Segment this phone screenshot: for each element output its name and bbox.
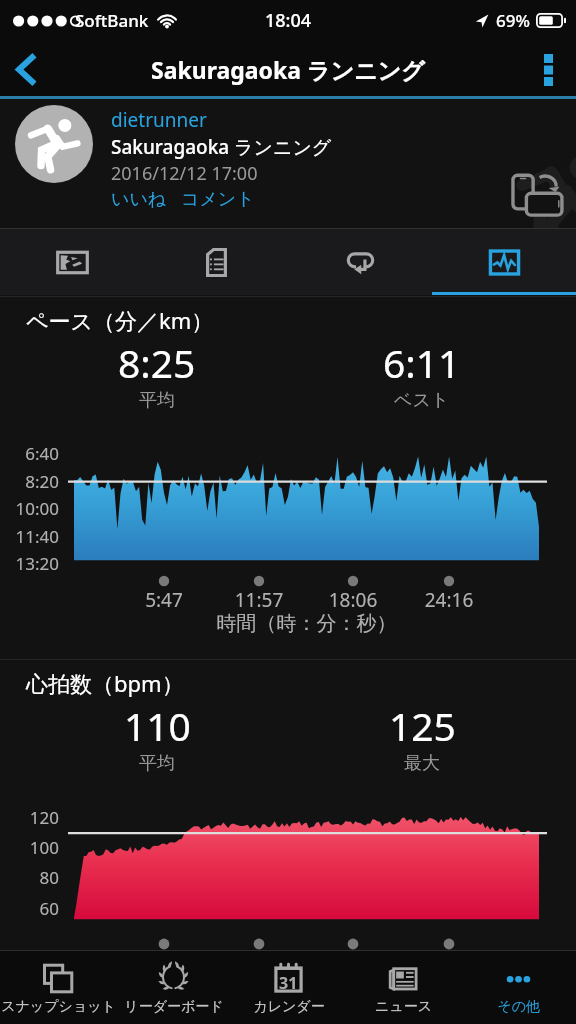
staticText: 80 (0, 866, 59, 889)
button[interactable]: Graphs (432, 229, 576, 295)
staticText: 2016/12/12 17:00 (111, 161, 258, 186)
staticText: 心拍数（bpm） (26, 668, 184, 698)
button[interactable]: ニュース (346, 951, 461, 1024)
button[interactable]: スナップショット (0, 951, 116, 1024)
staticText: リーダーボード (124, 998, 224, 1016)
staticText: スナップショット (1, 998, 116, 1016)
staticText: その他 (497, 998, 540, 1016)
button[interactable]: Laps (288, 229, 432, 295)
button[interactable]: その他 (461, 951, 576, 1024)
staticText: ペース（分／km） (26, 305, 214, 335)
button[interactable]: Details (144, 229, 288, 295)
staticText: 8:20 (0, 470, 59, 493)
staticText: Sakuragaoka ランニング (111, 134, 332, 160)
staticText: 最大 (404, 752, 440, 775)
staticText: 18:04 (265, 8, 312, 33)
staticText: 18:06 (308, 587, 398, 613)
staticText: 10:00 (0, 497, 59, 520)
staticText: 60 (0, 897, 59, 920)
staticText: 5:47 (119, 587, 209, 613)
staticText: 平均 (139, 389, 175, 412)
staticText: 11:57 (214, 587, 304, 613)
staticText: 8:25 (118, 336, 196, 389)
staticText: SoftBank (75, 9, 149, 32)
staticText: カレンダー (253, 998, 325, 1016)
staticText: 時間（時：分：秒） (74, 611, 539, 636)
staticText: 125 (389, 699, 456, 752)
staticText: 24:16 (404, 587, 494, 613)
staticText: 13:20 (0, 552, 59, 575)
staticText: 6:40 (0, 442, 59, 465)
staticText: dietrunner (111, 107, 207, 133)
button[interactable]: Rotate screen (512, 171, 568, 219)
staticText: 11:40 (0, 525, 59, 548)
staticText: 110 (124, 699, 191, 752)
button[interactable]: コメント (181, 188, 255, 211)
button[interactable]: いいね (111, 188, 167, 211)
staticText: 100 (0, 836, 59, 859)
staticText: Sakuragaoka ランニング (151, 54, 425, 85)
staticText: 31 (279, 972, 298, 994)
staticText: 69% (496, 9, 530, 32)
staticText: 平均 (139, 752, 175, 775)
button[interactable]: 31 (231, 951, 346, 1024)
button[interactable]: More options (520, 40, 576, 99)
staticText: ニュース (375, 998, 432, 1016)
staticText: 120 (0, 806, 59, 829)
staticText: 6:11 (383, 336, 461, 389)
button[interactable]: リーダーボード (116, 951, 231, 1024)
staticText: ベスト (394, 389, 450, 412)
button[interactable]: Map (0, 229, 144, 295)
button[interactable]: Back (0, 40, 52, 99)
